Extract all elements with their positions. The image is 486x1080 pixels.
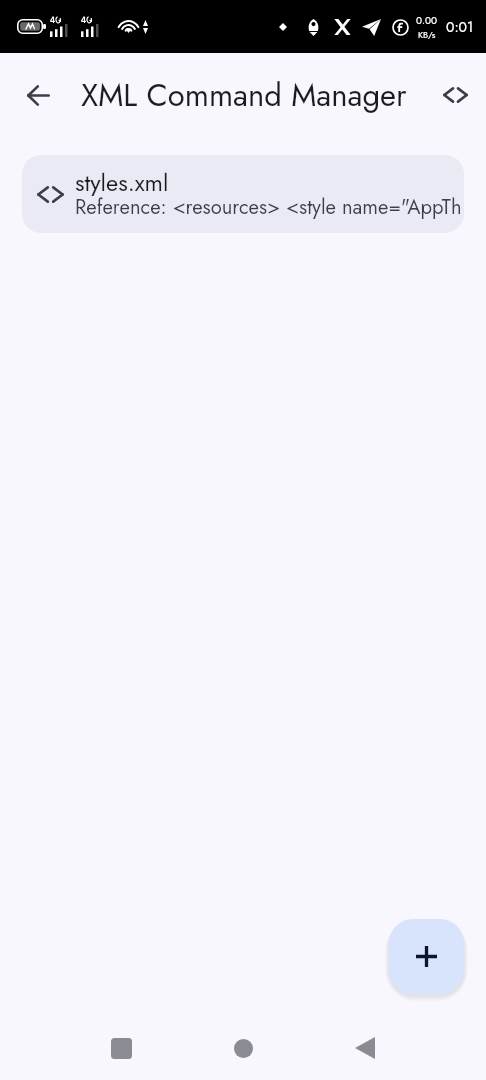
- staticText: styles.xml: [75, 166, 169, 200]
- button[interactable]: Home: [215, 1020, 271, 1076]
- staticText: 0.00: [416, 13, 437, 27]
- staticText: XML Command Manager: [81, 73, 407, 118]
- button[interactable]: Add command: [389, 919, 464, 994]
- staticText: KB/s: [418, 28, 436, 41]
- button[interactable]: Recent apps: [93, 1020, 149, 1076]
- staticText: 0:01: [446, 17, 474, 37]
- button[interactable]: Back: [337, 1020, 393, 1076]
- button[interactable]: View source code: [433, 73, 477, 117]
- button[interactable]: styles.xml: [22, 155, 464, 233]
- button[interactable]: Back: [14, 71, 62, 119]
- staticText: Reference: <resources> <style name="AppT…: [75, 192, 460, 221]
